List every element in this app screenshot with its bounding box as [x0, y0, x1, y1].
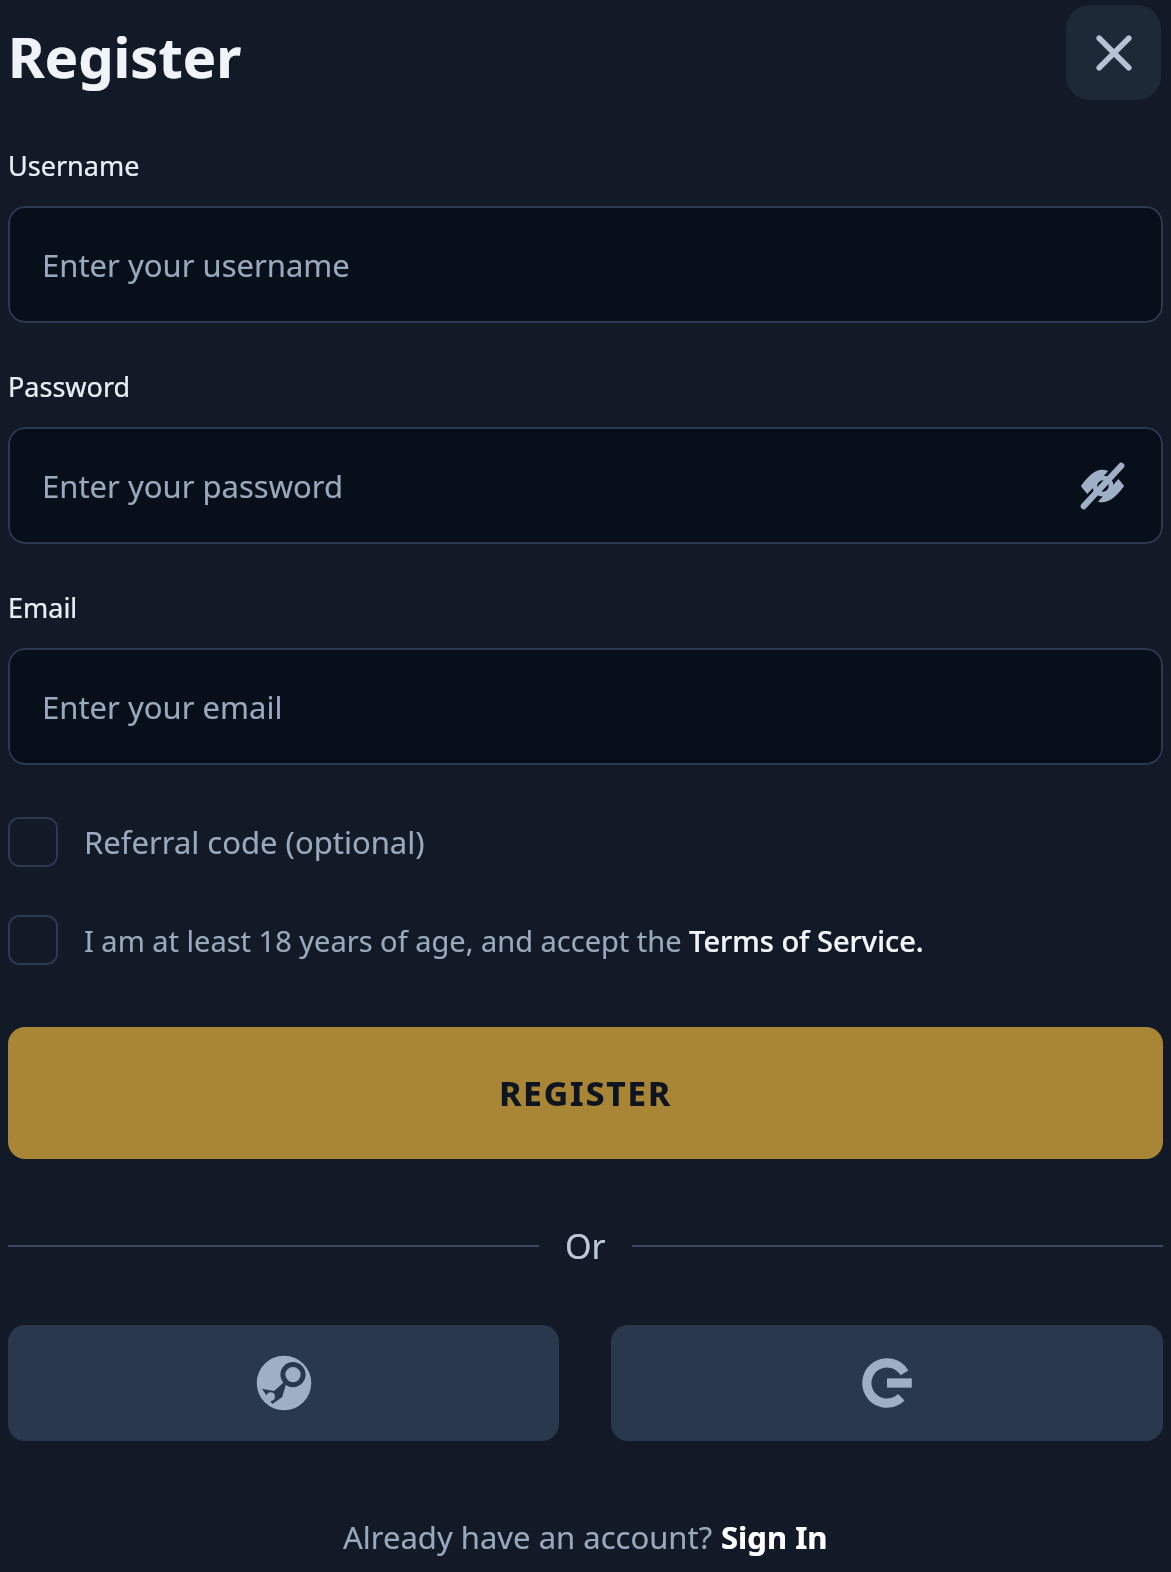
staticText: Email	[8, 589, 78, 626]
staticText: I am at least 18 years of age, and accep…	[84, 921, 924, 960]
staticText: Username	[8, 147, 140, 184]
staticText: REGISTER	[499, 1070, 672, 1116]
staticText: Sign In	[721, 1516, 828, 1558]
staticText: Already have an account?	[343, 1516, 721, 1558]
button[interactable]: Already have an account?	[343, 1516, 828, 1558]
staticText: Or	[565, 1223, 606, 1269]
staticText: Enter your password	[42, 465, 344, 507]
staticText: Register	[8, 18, 242, 94]
button[interactable]: Enter your username	[8, 206, 1163, 323]
button[interactable]: I am at least 18 years of age, and accep…	[8, 915, 1163, 965]
button[interactable]: Enter your email	[8, 648, 1163, 765]
staticText: Referral code (optional)	[84, 821, 425, 863]
staticText: Enter your email	[42, 686, 283, 728]
button[interactable]: Show password	[1075, 459, 1129, 513]
button[interactable]: Enter your password	[8, 427, 1163, 544]
button[interactable]: Referral code (optional)	[8, 817, 1163, 867]
button[interactable]: Close	[1066, 5, 1161, 100]
button[interactable]: Sign in with Google	[611, 1325, 1163, 1441]
button[interactable]: Sign in with Steam	[8, 1325, 559, 1441]
staticText: Enter your username	[42, 244, 350, 286]
button[interactable]: REGISTER	[8, 1027, 1163, 1159]
staticText: Password	[8, 368, 131, 405]
